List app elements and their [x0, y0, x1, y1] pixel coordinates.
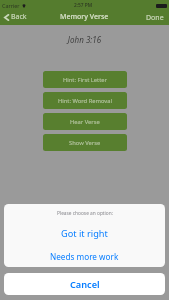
staticText: 2:57 PM: [74, 2, 93, 9]
staticText: John 3:16: [0, 34, 169, 45]
staticText: Show Verse: [69, 139, 101, 147]
staticText: Carrier: [2, 2, 20, 9]
button[interactable]: Show Verse: [43, 134, 127, 151]
button[interactable]: Got it right: [4, 221, 165, 245]
staticText: Hear Verse: [70, 118, 100, 126]
button[interactable]: Hint: Word Removal: [43, 92, 127, 109]
staticText: Cancel: [70, 278, 100, 291]
button[interactable]: Done: [140, 10, 169, 24]
staticText: Needs more work: [50, 251, 119, 262]
staticText: Got it right: [61, 227, 108, 240]
staticText: Hint: First Letter: [63, 76, 107, 84]
button[interactable]: Hear Verse: [43, 113, 127, 130]
button[interactable]: Back: [0, 10, 31, 24]
staticText: Hint: Word Removal: [58, 97, 113, 105]
staticText: Back: [11, 12, 27, 22]
button[interactable]: Needs more work: [4, 245, 165, 267]
button[interactable]: Hint: First Letter: [43, 71, 127, 88]
button[interactable]: Cancel: [4, 273, 165, 295]
staticText: Please choose an option:: [57, 210, 113, 217]
staticText: Memory Verse: [60, 12, 109, 22]
